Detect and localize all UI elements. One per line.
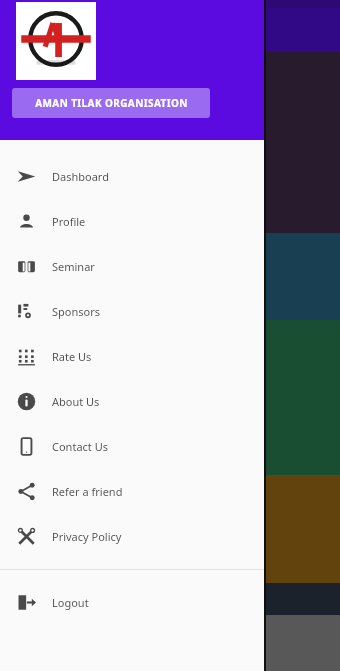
- staticText: Rate Us: [52, 349, 92, 364]
- button[interactable]: Sponsors: [0, 289, 264, 334]
- button[interactable]: Contact Us: [0, 424, 264, 469]
- staticText: Sponsors: [52, 304, 100, 319]
- staticText: AMAN TILAK ORGANISATION: [35, 96, 188, 110]
- staticText: Logout: [52, 595, 89, 610]
- button[interactable]: Seminar: [0, 244, 264, 289]
- staticText: pp at the: [200, 96, 259, 114]
- staticText: Contact Us: [52, 439, 108, 454]
- staticText: Dashboard: [52, 169, 109, 184]
- staticText: Profile: [52, 214, 86, 229]
- button[interactable]: Privacy Policy: [0, 514, 264, 559]
- button[interactable]: AMAN TILAK ORGANISATION: [12, 88, 210, 118]
- button[interactable]: About Us: [0, 379, 264, 424]
- staticText: Privacy Policy: [52, 529, 122, 544]
- staticText: Refer a friend: [52, 484, 123, 499]
- staticText: About Us: [52, 394, 100, 409]
- button[interactable]: Rate Us: [0, 334, 264, 379]
- button[interactable]: Refer a friend: [0, 469, 264, 514]
- button[interactable]: Profile: [0, 199, 264, 244]
- button[interactable]: Dashboard: [0, 154, 264, 199]
- staticText: Seminar: [52, 259, 95, 274]
- button[interactable]: Logout: [0, 580, 264, 625]
